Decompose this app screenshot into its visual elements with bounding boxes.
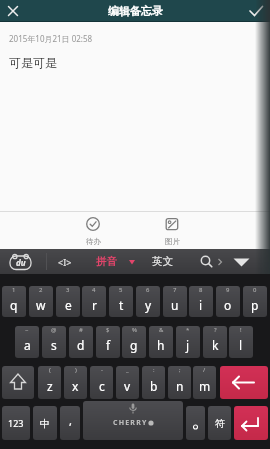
staticText: 2 xyxy=(39,286,43,294)
staticText: y xyxy=(145,297,152,313)
staticText: <I> xyxy=(58,256,72,268)
staticText: b xyxy=(150,378,158,394)
button[interactable]: 拼音 xyxy=(94,251,138,272)
staticText: du xyxy=(16,257,26,268)
button[interactable] xyxy=(229,251,255,272)
staticText: 编辑备忘录 xyxy=(108,4,163,18)
button[interactable]: f xyxy=(96,326,120,358)
staticText: # xyxy=(79,326,83,334)
staticText: 符 xyxy=(215,417,225,430)
staticText: 拼音 xyxy=(96,255,117,268)
button[interactable]: i xyxy=(189,286,213,317)
staticText: p xyxy=(251,297,259,313)
staticText: 6 xyxy=(146,286,150,294)
staticText: h xyxy=(157,337,165,353)
button[interactable]: 待办 xyxy=(73,213,113,248)
button[interactable]: l xyxy=(229,326,253,358)
staticText: - xyxy=(101,366,103,374)
staticText: : xyxy=(153,366,155,374)
staticText: 0 xyxy=(253,286,257,294)
staticText: $ xyxy=(106,326,110,334)
button[interactable]: , xyxy=(60,406,80,440)
button[interactable]: c xyxy=(90,366,113,399)
button[interactable]: <I> xyxy=(53,251,77,272)
button[interactable]: u xyxy=(163,286,187,317)
button[interactable]: e xyxy=(56,286,80,317)
button[interactable] xyxy=(220,366,268,399)
button[interactable]: q xyxy=(2,286,26,317)
staticText: ; xyxy=(179,366,181,374)
button[interactable] xyxy=(4,2,22,20)
staticText: 9 xyxy=(226,286,230,294)
staticText: @ xyxy=(51,326,57,334)
button[interactable] xyxy=(196,251,226,272)
button[interactable]: t xyxy=(109,286,133,317)
button[interactable]: 图片 xyxy=(152,213,192,248)
staticText: c xyxy=(99,378,105,394)
staticText: q xyxy=(10,297,18,313)
button[interactable]: du xyxy=(6,251,36,272)
button[interactable] xyxy=(234,406,268,440)
button[interactable] xyxy=(186,406,205,440)
button[interactable]: r xyxy=(82,286,106,317)
staticText: g xyxy=(130,337,138,353)
button[interactable]: d xyxy=(69,326,93,358)
staticText: k xyxy=(212,337,219,353)
staticText: % xyxy=(132,326,137,334)
staticText: ) xyxy=(75,366,77,374)
button[interactable]: 123 xyxy=(2,406,30,440)
staticText: f xyxy=(106,337,111,353)
staticText: * xyxy=(186,326,190,334)
button[interactable]: v xyxy=(116,366,139,399)
button[interactable]: x xyxy=(64,366,87,399)
button[interactable]: a xyxy=(15,326,39,358)
button[interactable]: 符 xyxy=(208,406,231,440)
button[interactable]: p xyxy=(243,286,267,317)
button[interactable] xyxy=(246,1,266,21)
button[interactable]: b xyxy=(142,366,165,399)
staticText: 5 xyxy=(119,286,123,294)
staticText: ! xyxy=(240,326,242,334)
button[interactable]: h xyxy=(149,326,173,358)
button[interactable]: s xyxy=(42,326,66,358)
staticText: ? xyxy=(214,326,217,334)
button[interactable]: n xyxy=(168,366,191,399)
staticText: v xyxy=(124,378,131,394)
staticText: 中 xyxy=(40,417,50,430)
staticText: i xyxy=(199,297,203,313)
button[interactable]: j xyxy=(176,326,200,358)
staticText: m xyxy=(199,378,211,394)
button[interactable]: o xyxy=(216,286,240,317)
staticText: u xyxy=(171,297,179,313)
staticText: t xyxy=(119,297,124,313)
staticText: 2015年10月21日 02:58 xyxy=(9,33,93,44)
staticText: z xyxy=(47,378,53,394)
staticText: o xyxy=(224,297,232,313)
button[interactable]: k xyxy=(203,326,227,358)
staticText: 3 xyxy=(66,286,70,294)
staticText: s xyxy=(51,337,57,353)
button[interactable]: z xyxy=(38,366,61,399)
staticText: CHERRY xyxy=(113,418,148,428)
staticText: 123 xyxy=(8,417,24,429)
button[interactable]: m xyxy=(193,366,216,399)
staticText: ( xyxy=(49,366,51,374)
staticText: 8 xyxy=(199,286,203,294)
button[interactable]: 中 xyxy=(33,406,57,440)
staticText: / xyxy=(203,366,206,374)
button[interactable]: g xyxy=(122,326,146,358)
button[interactable]: y xyxy=(136,286,160,317)
staticText: l xyxy=(239,337,243,353)
staticText: 1 xyxy=(12,286,16,294)
staticText: 可是可是 xyxy=(9,55,57,70)
staticText: r xyxy=(92,297,97,313)
staticText: x xyxy=(72,378,79,394)
button[interactable]: CHERRY xyxy=(83,401,183,440)
staticText: w xyxy=(36,297,46,313)
staticText: 7 xyxy=(173,286,177,294)
staticText: a xyxy=(24,337,31,353)
button[interactable]: w xyxy=(29,286,53,317)
button[interactable] xyxy=(2,366,34,399)
staticText: j xyxy=(186,337,190,353)
button[interactable]: 英文 xyxy=(146,251,178,272)
